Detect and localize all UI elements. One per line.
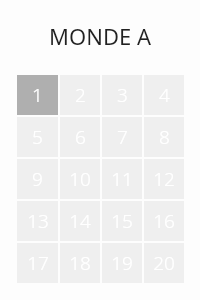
staticText: 3 (117, 82, 128, 108)
staticText: 10 (69, 166, 91, 192)
staticText: 8 (159, 124, 170, 150)
staticText: 17 (27, 250, 49, 276)
staticText: 9 (32, 166, 43, 192)
staticText: 5 (32, 124, 43, 150)
staticText: 19 (111, 250, 133, 276)
staticText: MONDE A (49, 21, 151, 51)
staticText: 20 (153, 250, 175, 276)
staticText: 4 (159, 82, 170, 108)
button[interactable]: 20 (144, 243, 184, 283)
staticText: 15 (111, 208, 133, 234)
staticText: 12 (153, 166, 175, 192)
staticText: 2 (75, 82, 86, 108)
staticText: 13 (27, 208, 49, 234)
staticText: 7 (117, 124, 128, 150)
staticText: 18 (69, 250, 91, 276)
staticText: 1 (32, 82, 43, 108)
button[interactable]: 18 (60, 243, 100, 283)
staticText: 6 (75, 124, 86, 150)
button[interactable]: 1 (17, 75, 58, 115)
staticText: 11 (111, 166, 133, 192)
staticText: 16 (153, 208, 175, 234)
staticText: 14 (69, 208, 91, 234)
